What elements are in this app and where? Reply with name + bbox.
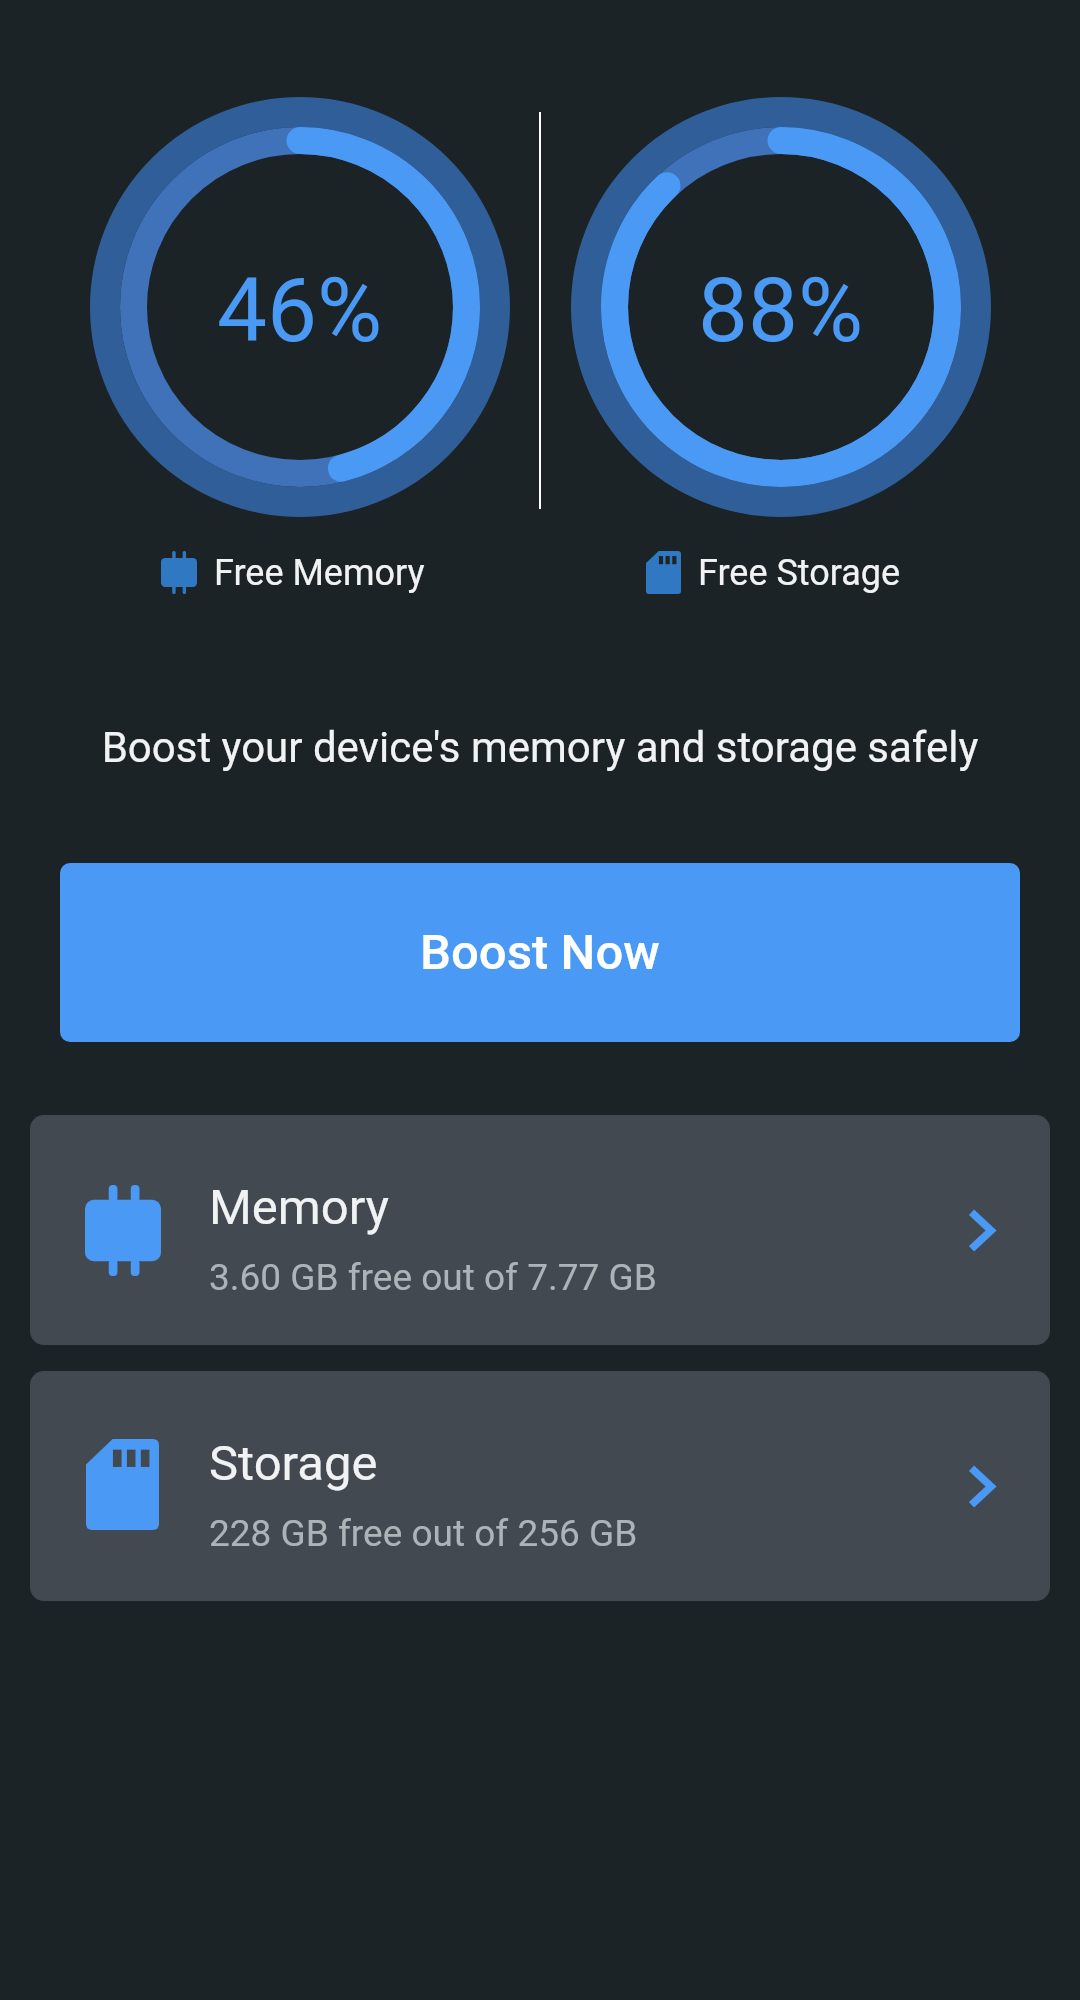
- button[interactable]: Storage: [30, 1371, 1050, 1601]
- staticText: 228 GB free out of 256 GB: [209, 1512, 638, 1555]
- other: Open Storage: [965, 1461, 1005, 1516]
- staticText: 3.60 GB free out of 7.77 GB: [209, 1256, 657, 1299]
- staticText: Boost your device's memory and storage s…: [0, 723, 1080, 772]
- staticText: Storage: [209, 1435, 378, 1492]
- staticText: Free Memory: [214, 552, 425, 594]
- other: Open Memory: [965, 1205, 1005, 1260]
- staticText: 46%: [217, 258, 383, 362]
- staticText: Memory: [209, 1179, 389, 1236]
- button[interactable]: Memory: [30, 1115, 1050, 1345]
- staticText: 88%: [698, 258, 864, 362]
- staticText: Boost Now: [420, 924, 660, 981]
- button[interactable]: Boost Now: [60, 863, 1020, 1042]
- staticText: Free Storage: [698, 552, 901, 594]
